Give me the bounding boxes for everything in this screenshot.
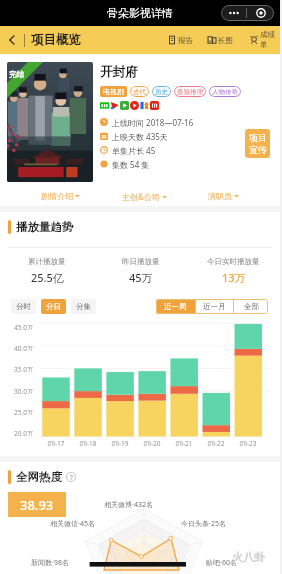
staticText: 历史 [155, 88, 168, 96]
staticText: 骨朵影视详情 [107, 6, 173, 20]
button[interactable]: 全部 [234, 299, 268, 314]
staticText: 主创&公司 [122, 191, 160, 202]
staticText: 分日 [46, 302, 61, 311]
staticText: 全网热度 [16, 470, 62, 484]
button[interactable]: 成绩单 [250, 26, 280, 54]
staticText: ? [70, 473, 73, 482]
button[interactable]: 近一月 [196, 299, 233, 314]
button[interactable]: 电视剧 [103, 86, 124, 97]
button[interactable]: 分时 [11, 299, 36, 314]
staticText: 电视剧 [103, 87, 124, 96]
staticText: 09-17 [40, 439, 72, 448]
button[interactable]: Help [66, 472, 76, 482]
staticText: 播放量趋势 [16, 220, 74, 234]
staticText: 09-19 [104, 439, 136, 448]
button[interactable]: 分集 [71, 299, 96, 314]
button[interactable]: 项目 宣传 [245, 129, 270, 158]
staticText: 新闻数·98名 [31, 558, 69, 568]
staticText: 相关微博·432名 [104, 500, 153, 510]
staticText: 相关微信·45名 [50, 519, 95, 529]
staticText: 上线时间 2018—07-16 [112, 117, 194, 128]
staticText: 分时 [16, 302, 31, 311]
button[interactable]: 报告 [168, 26, 193, 54]
button[interactable]: 人物传奇 [212, 86, 238, 97]
staticText: 09-20 [136, 439, 168, 448]
staticText: 全部 [244, 302, 259, 311]
staticText: 今日实时播放量 [207, 257, 260, 266]
staticText: 累计播放量 [28, 257, 66, 266]
button[interactable]: 近一周 [156, 299, 195, 314]
staticText: 演职员 [208, 191, 232, 201]
staticText: 集数 54 集 [112, 159, 150, 170]
staticText: 09-21 [168, 439, 200, 448]
staticText: 长图 [218, 36, 233, 45]
staticText: 报告 [178, 36, 193, 45]
button[interactable]: 悬疑推理 [177, 86, 203, 97]
staticText: 09-22 [200, 439, 232, 448]
staticText: 30.0万 [14, 387, 34, 394]
staticText: 今日头条·25名 [181, 519, 226, 529]
staticText: 昨日播放量 [122, 257, 160, 266]
button[interactable]: 历史 [155, 86, 168, 97]
staticText: 剧情介绍 [41, 191, 73, 201]
staticText: 25.5亿 [31, 270, 64, 285]
staticText: 开封府 [100, 64, 138, 80]
staticText: 近一月 [203, 302, 226, 311]
staticText: 悬疑推理 [177, 88, 203, 96]
button[interactable]: 分日 [41, 299, 66, 314]
button[interactable]: 主创&公司 [122, 188, 167, 205]
staticText: 近一周 [164, 302, 187, 311]
staticText: 分集 [76, 302, 91, 311]
staticText: 人物传奇 [212, 88, 238, 96]
button[interactable]: 长图 [208, 26, 233, 54]
staticText: 古代 [133, 88, 146, 96]
staticText: 45万 [129, 270, 153, 285]
button[interactable]: Back [0, 26, 24, 54]
staticText: 13万 [222, 270, 246, 285]
staticText: 45.0万 [14, 323, 34, 330]
button[interactable]: Close [247, 5, 274, 21]
staticText: 09-18 [72, 439, 104, 448]
staticText: 成绩单 [260, 30, 280, 50]
staticText: 09-23 [232, 439, 264, 448]
staticText: 25.0万 [14, 408, 34, 415]
button[interactable]: 38.93 [8, 492, 66, 517]
staticText: 单集片长 45 [112, 145, 156, 156]
staticText: 20.0万 [14, 429, 34, 436]
staticText: 贴吧·60名 [206, 558, 237, 568]
button[interactable]: 古代 [133, 86, 146, 97]
staticText: 完结 [9, 70, 24, 79]
button[interactable]: 演职员 [208, 188, 239, 204]
staticText: 38.93 [20, 496, 54, 514]
staticText: 上映天数 435天 [112, 131, 168, 142]
staticText: 35.0万 [14, 365, 34, 372]
button[interactable]: More [221, 5, 246, 21]
staticText: 项目概览 [31, 32, 81, 48]
staticText: 项目 宣传 [249, 132, 267, 156]
staticText: 40.0万 [14, 344, 34, 351]
staticText: 火八卦 [232, 550, 265, 564]
button[interactable]: 剧情介绍 [41, 188, 80, 204]
